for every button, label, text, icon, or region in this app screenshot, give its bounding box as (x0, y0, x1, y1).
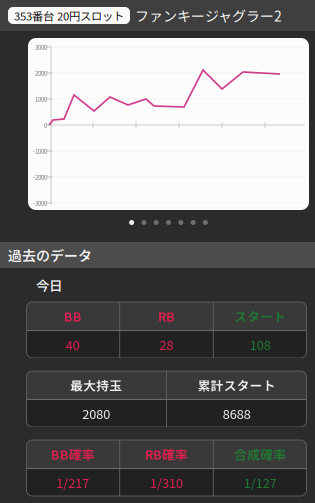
staticText: 8688 (223, 404, 251, 423)
staticText: 353番台 20円スロット (14, 7, 124, 24)
staticText: BB確率 (51, 445, 95, 463)
staticText: 0 (44, 121, 47, 129)
staticText: 合成確率 (234, 445, 286, 463)
staticText: 1/217 (56, 473, 89, 492)
staticText: 108 (250, 335, 271, 354)
staticText: 1/127 (244, 473, 277, 492)
staticText: 1/310 (150, 473, 183, 492)
staticText: スタート (234, 307, 286, 325)
button[interactable]: 353番台 20円スロット (8, 7, 130, 24)
staticText: 今日 (36, 275, 62, 295)
staticText: -2000 (33, 173, 47, 181)
staticText: 最大持玉 (70, 376, 122, 394)
staticText: 28 (159, 335, 173, 354)
staticText: 40 (66, 335, 80, 354)
staticText: 3000 (35, 43, 47, 51)
staticText: 1000 (35, 95, 47, 103)
staticText: RB確率 (145, 445, 188, 463)
staticText: -1000 (33, 147, 47, 155)
staticText: BB (64, 307, 82, 325)
staticText: RB (158, 307, 175, 325)
staticText: 2000 (35, 69, 47, 77)
staticText: 過去のデータ (8, 245, 92, 265)
staticText: 累計スタート (198, 376, 276, 394)
staticText: -3000 (33, 199, 47, 207)
staticText: 2080 (82, 404, 110, 423)
staticText: ファンキージャグラー2 (135, 5, 282, 26)
